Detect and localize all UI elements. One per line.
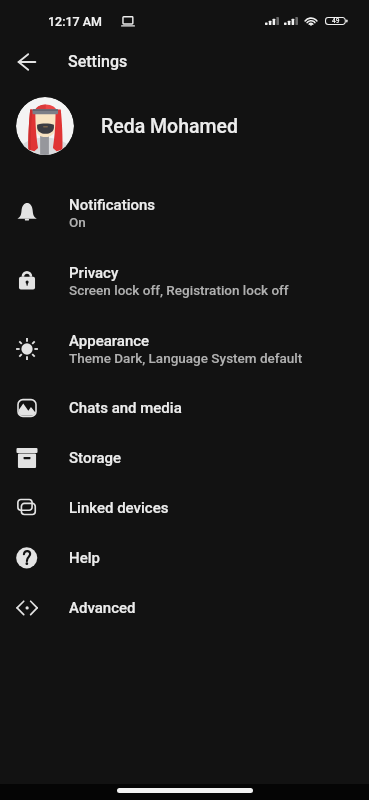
staticText: Screen lock off, Registration lock off xyxy=(69,282,289,298)
staticText: Appearance xyxy=(69,332,150,350)
staticText: Reda Mohamed xyxy=(101,115,238,138)
staticText: On xyxy=(69,214,86,230)
staticText: Theme Dark, Language System default xyxy=(69,350,303,366)
staticText: 12:17 AM xyxy=(48,14,103,29)
button[interactable]: Back xyxy=(6,41,47,82)
staticText: Storage xyxy=(69,449,122,467)
button[interactable]: Storage xyxy=(0,433,369,483)
staticText: Advanced xyxy=(69,599,136,617)
button[interactable]: Chats and media xyxy=(0,383,369,433)
staticText: Settings xyxy=(68,52,128,71)
staticText: Privacy xyxy=(69,264,119,282)
button[interactable]: Reda Mohamed xyxy=(0,85,369,167)
staticText: 49 xyxy=(332,17,340,25)
button[interactable]: Advanced xyxy=(0,583,369,633)
staticText: Notifications xyxy=(69,196,156,214)
button[interactable]: Appearance xyxy=(0,315,369,383)
staticText: Linked devices xyxy=(69,499,169,517)
button[interactable]: Notifications xyxy=(0,179,369,247)
button[interactable]: Help xyxy=(0,533,369,583)
button[interactable]: Linked devices xyxy=(0,483,369,533)
staticText: Chats and media xyxy=(69,399,182,417)
staticText: Help xyxy=(69,549,100,567)
button[interactable]: Privacy xyxy=(0,247,369,315)
